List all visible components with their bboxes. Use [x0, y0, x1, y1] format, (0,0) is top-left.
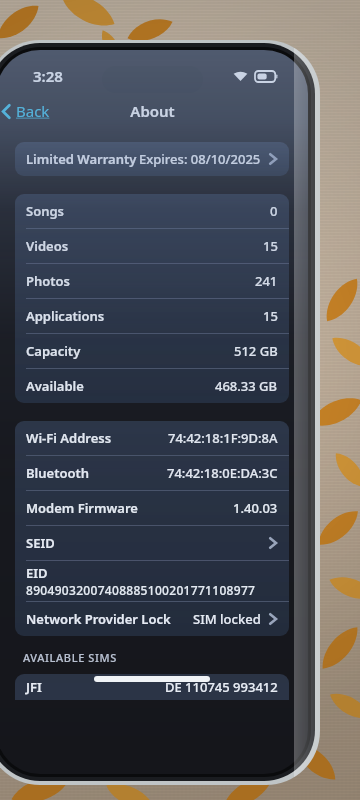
staticText: Capacity — [26, 342, 81, 360]
button[interactable]: Modem Firmware — [15, 491, 289, 525]
button[interactable]: SEID — [15, 526, 289, 560]
staticText: 3:28 — [33, 66, 63, 86]
staticText: DE 110745 993412 — [165, 678, 278, 696]
staticText: Wi-Fi Address — [26, 429, 112, 447]
button[interactable]: EID — [15, 561, 289, 601]
other: Open details — [268, 152, 278, 166]
button[interactable]: Bluetooth — [15, 456, 289, 490]
staticText: SEID — [26, 534, 55, 552]
staticText: Photos — [26, 272, 71, 290]
button[interactable]: Back — [0, 99, 60, 123]
button[interactable]: Videos — [15, 229, 289, 263]
staticText: SIM locked — [193, 610, 261, 628]
other: Open details — [268, 536, 278, 550]
staticText: 89049032007408885100201771108977 — [26, 582, 256, 598]
button[interactable]: Capacity — [15, 334, 289, 368]
button[interactable]: Songs — [15, 194, 289, 228]
staticText: EID — [26, 564, 48, 582]
staticText: AVAILABLE SIMS — [23, 650, 117, 665]
staticText: 468.33 GB — [215, 377, 278, 395]
staticText: Songs — [26, 202, 65, 220]
staticText: Available — [26, 377, 84, 395]
staticText: Expires: 08/10/2025 — [139, 150, 261, 168]
button[interactable]: Applications — [15, 299, 289, 333]
staticText: 512 GB — [234, 342, 278, 360]
staticText: 0 — [270, 202, 278, 220]
button[interactable]: Wi-Fi Address — [15, 421, 289, 455]
staticText: 15 — [263, 237, 278, 255]
staticText: 241 — [255, 272, 278, 290]
staticText: Videos — [26, 237, 69, 255]
button[interactable]: Photos — [15, 264, 289, 298]
staticText: 1.40.03 — [233, 499, 278, 517]
staticText: Limited Warranty — [26, 150, 137, 168]
staticText: Back — [16, 101, 50, 121]
staticText: 74:42:18:1F:9D:8A — [168, 429, 278, 447]
staticText: About — [130, 101, 175, 121]
staticText: Modem Firmware — [26, 499, 138, 517]
staticText: Network Provider Lock — [26, 610, 171, 628]
other: Open details — [268, 612, 278, 626]
button[interactable]: Limited Warranty — [15, 142, 289, 176]
staticText: 74:42:18:0E:DA:3C — [167, 464, 278, 482]
button[interactable]: JFI — [15, 674, 289, 700]
staticText: 15 — [263, 307, 278, 325]
staticText: Applications — [26, 307, 105, 325]
staticText: JFI — [26, 678, 42, 696]
button[interactable]: Network Provider Lock — [15, 602, 289, 636]
button[interactable]: Available — [15, 369, 289, 403]
staticText: Bluetooth — [26, 464, 90, 482]
